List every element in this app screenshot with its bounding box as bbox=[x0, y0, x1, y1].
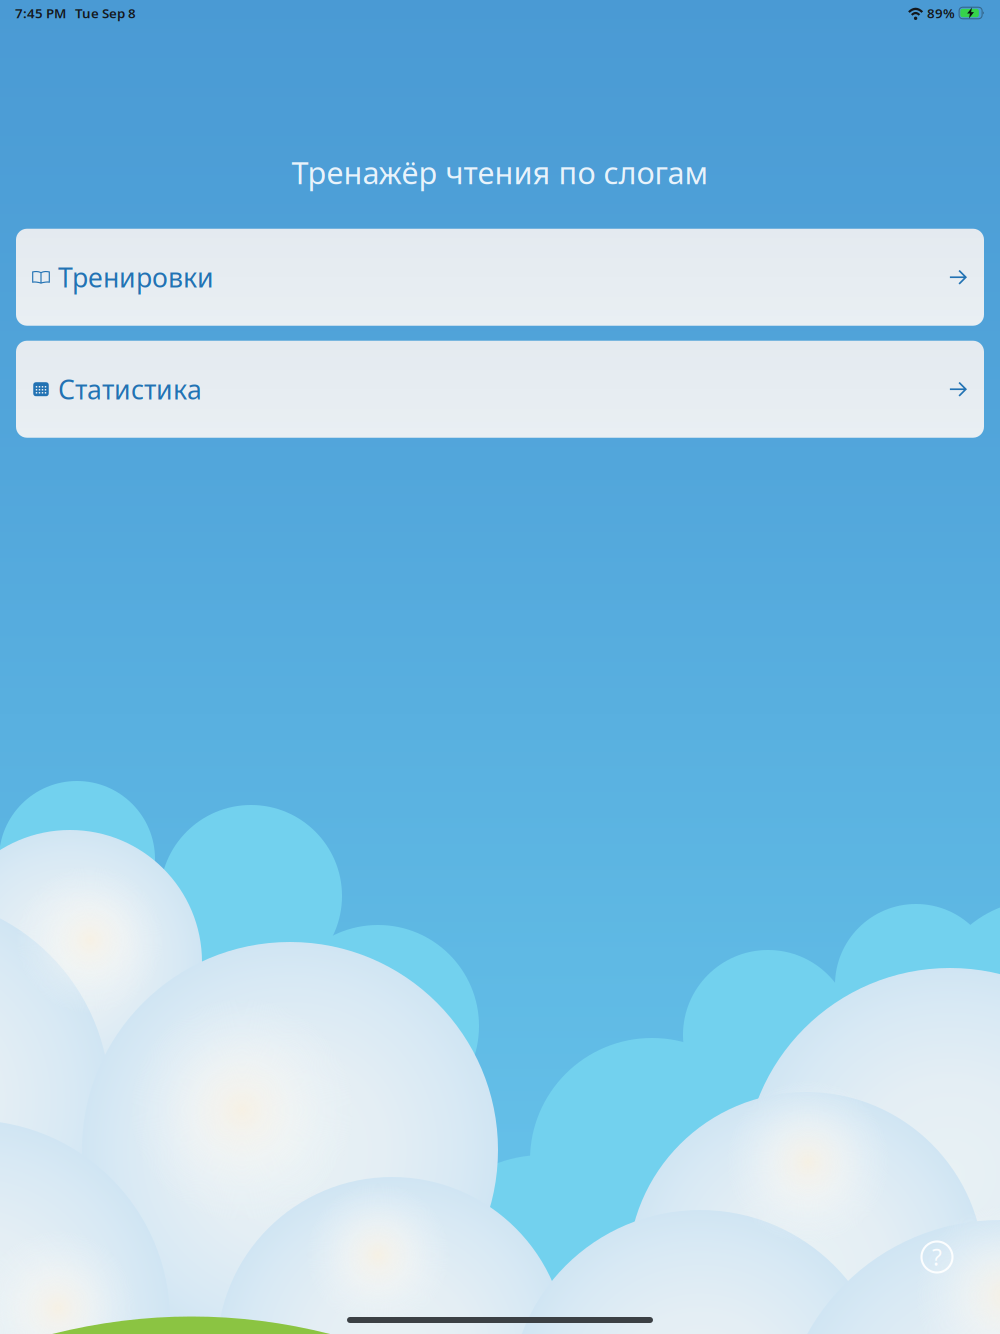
button[interactable]: Тренировки bbox=[16, 229, 984, 326]
button[interactable]: Статистика bbox=[16, 341, 984, 438]
staticText: Тренировки bbox=[58, 259, 214, 295]
button[interactable]: Help bbox=[915, 1235, 959, 1279]
staticText: Статистика bbox=[58, 371, 202, 407]
staticText: 7:45 PM bbox=[15, 4, 66, 22]
staticText: 89% bbox=[927, 4, 955, 22]
staticText: Tue Sep 8 bbox=[75, 4, 136, 22]
staticText: ? bbox=[932, 1242, 942, 1272]
staticText: Тренажёр чтения по слогам bbox=[291, 152, 708, 193]
